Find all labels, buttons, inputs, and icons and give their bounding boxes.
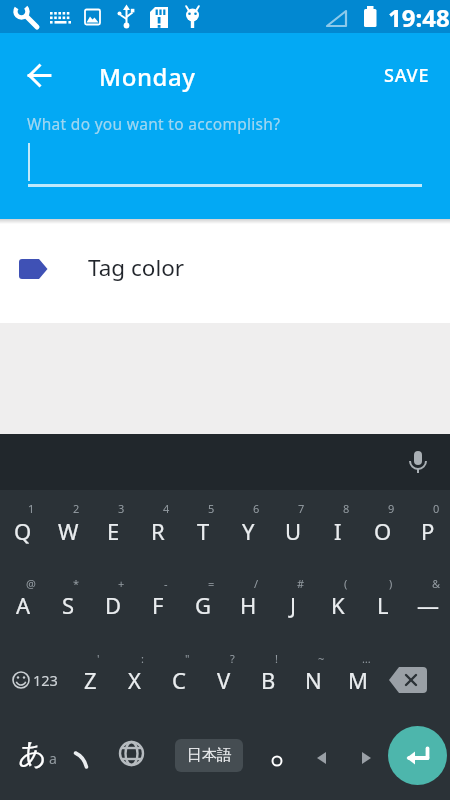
button[interactable] <box>0 715 66 800</box>
button[interactable] <box>270 570 315 636</box>
button[interactable] <box>255 715 299 800</box>
staticText: ? <box>230 651 235 666</box>
button[interactable] <box>180 570 225 636</box>
staticText: R <box>151 516 165 546</box>
button[interactable] <box>106 715 152 800</box>
staticText: - <box>164 576 168 591</box>
button[interactable] <box>202 645 246 711</box>
button[interactable] <box>20 108 430 193</box>
staticText: What do you want to accomplish? <box>27 113 281 134</box>
staticText: N <box>305 665 322 695</box>
button[interactable] <box>90 496 135 562</box>
staticText: 4 <box>163 501 170 516</box>
staticText: P <box>421 516 435 546</box>
button[interactable]: 日本語 <box>175 739 243 772</box>
staticText: 8 <box>343 501 350 516</box>
button[interactable] <box>270 496 315 562</box>
staticText: B <box>261 665 276 695</box>
staticText: K <box>331 590 345 620</box>
staticText: 7 <box>298 501 305 516</box>
staticText: 2 <box>73 501 80 516</box>
button[interactable] <box>180 496 225 562</box>
button[interactable] <box>0 570 45 636</box>
button[interactable] <box>344 715 388 800</box>
staticText: ~ <box>318 651 325 666</box>
staticText: あ <box>18 736 47 771</box>
staticText: … <box>362 651 371 666</box>
staticText: Monday <box>99 60 196 93</box>
button[interactable] <box>381 645 447 711</box>
button[interactable] <box>388 726 447 785</box>
button[interactable] <box>225 496 270 562</box>
staticText: Tag color <box>88 252 185 283</box>
staticText: * <box>73 576 80 591</box>
button[interactable] <box>135 496 180 562</box>
staticText: X <box>128 665 141 695</box>
button[interactable] <box>360 496 405 562</box>
staticText: A <box>16 590 31 620</box>
staticText: + <box>118 576 125 591</box>
staticText: & <box>432 576 441 591</box>
button[interactable] <box>360 570 405 636</box>
staticText: 123 <box>33 670 58 690</box>
staticText: L <box>377 590 389 620</box>
button[interactable] <box>0 496 45 562</box>
button[interactable] <box>0 232 450 304</box>
staticText: Z <box>84 665 97 695</box>
staticText: Y <box>242 516 255 546</box>
staticText: 5 <box>208 501 215 516</box>
staticText: a <box>49 749 57 768</box>
staticText: 6 <box>253 501 260 516</box>
button[interactable] <box>291 645 335 711</box>
staticText: : <box>141 651 144 666</box>
button[interactable] <box>16 51 64 99</box>
staticText: O <box>374 516 392 546</box>
staticText: ' <box>97 651 100 666</box>
button[interactable] <box>315 570 360 636</box>
staticText: 1 <box>28 501 35 516</box>
button[interactable] <box>112 645 156 711</box>
staticText: ) <box>389 576 393 591</box>
button[interactable] <box>45 496 90 562</box>
staticText: E <box>107 516 120 546</box>
staticText: 3 <box>118 501 125 516</box>
button[interactable]: SAVE <box>372 55 442 95</box>
staticText: 19:48 <box>388 1 450 34</box>
staticText: V <box>217 665 231 695</box>
staticText: # <box>297 576 305 591</box>
staticText: SAVE <box>384 63 430 88</box>
staticText: U <box>285 516 302 546</box>
staticText: T <box>197 516 210 546</box>
staticText: ( <box>344 576 348 591</box>
button[interactable] <box>0 645 66 711</box>
button[interactable] <box>405 570 450 636</box>
staticText: G <box>195 590 212 620</box>
staticText: C <box>172 665 186 695</box>
staticText: 日本語 <box>187 746 232 765</box>
button[interactable] <box>90 570 135 636</box>
staticText: I <box>334 516 342 546</box>
button[interactable] <box>66 715 106 800</box>
button[interactable] <box>225 570 270 636</box>
button[interactable] <box>336 645 380 711</box>
staticText: — <box>417 590 440 620</box>
button[interactable] <box>68 645 112 711</box>
staticText: D <box>105 590 122 620</box>
staticText: @ <box>26 576 36 591</box>
button[interactable] <box>157 645 201 711</box>
staticText: S <box>62 590 75 620</box>
staticText: Q <box>14 516 32 546</box>
button[interactable] <box>135 570 180 636</box>
button[interactable] <box>396 440 440 484</box>
staticText: ! <box>275 651 278 666</box>
button[interactable] <box>405 496 450 562</box>
button[interactable] <box>45 570 90 636</box>
button[interactable] <box>246 645 290 711</box>
button[interactable] <box>300 715 344 800</box>
staticText: / <box>254 576 259 591</box>
staticText: = <box>208 576 215 591</box>
staticText: H <box>240 590 257 620</box>
staticText: 0 <box>433 501 440 516</box>
staticText: W <box>58 516 79 546</box>
button[interactable] <box>315 496 360 562</box>
